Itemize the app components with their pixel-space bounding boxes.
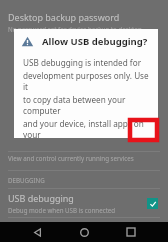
staticText: Revoke USB debugging authorizations [8, 225, 168, 237]
staticText: and your device, install apps on your [23, 118, 151, 138]
staticText: development purposes only. Use it [23, 70, 151, 92]
staticText: Allow USB debugging? [42, 35, 148, 48]
other: USB debugging enabled [147, 198, 158, 209]
button[interactable]: Revoke USB debugging authorizations [0, 225, 168, 237]
staticText: USB debugging [8, 192, 74, 204]
staticText: Desktop backup password [8, 11, 120, 23]
staticText: Debug mode when USB is connected [8, 206, 116, 214]
button[interactable]: Recent apps [121, 222, 141, 242]
button[interactable]: Home [74, 222, 94, 242]
staticText: USB debugging is intended for [23, 57, 142, 68]
button[interactable]: Desktop backup password [0, 10, 168, 33]
staticText: View and control currently running servi… [8, 154, 134, 162]
staticText: to copy data between your computer [23, 94, 151, 116]
staticText: DEBUGGING [8, 176, 45, 184]
staticText: No password set for device backup to des… [8, 25, 142, 33]
button[interactable]: USB debugging [0, 189, 168, 217]
button[interactable]: Back [27, 222, 47, 242]
